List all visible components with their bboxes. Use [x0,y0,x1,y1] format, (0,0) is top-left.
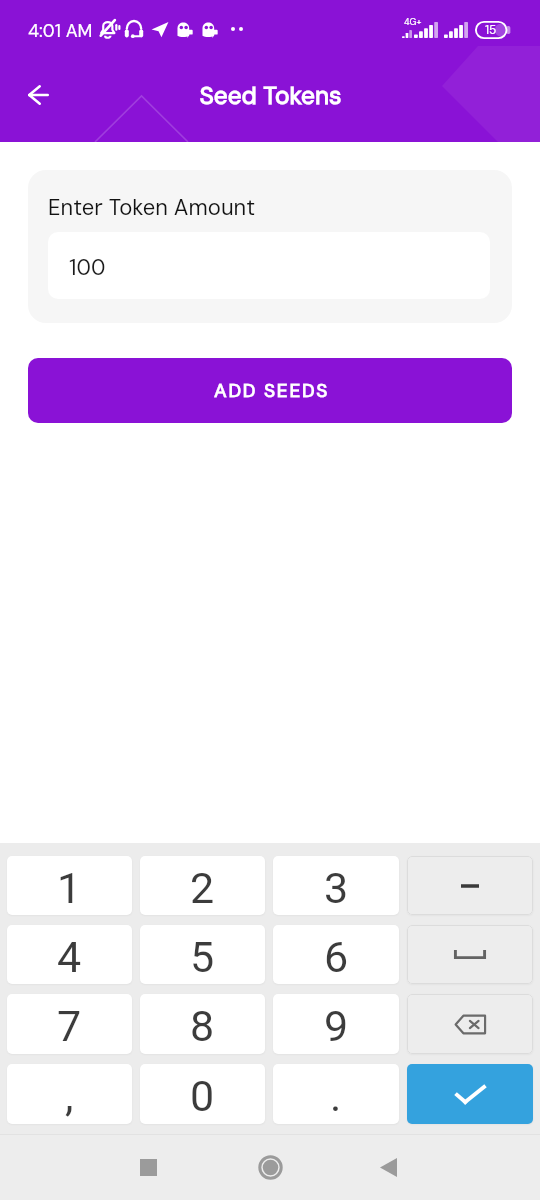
staticText: 4G+ [404,16,422,28]
staticText: 4:01 AM [28,19,93,42]
staticText: 2 [190,863,215,913]
button[interactable]: 7 [7,994,132,1054]
staticText: 9 [324,1001,349,1051]
button[interactable]: 5 [140,925,265,984]
button[interactable]: Minus [407,856,533,915]
button[interactable]: Back [364,1143,412,1191]
staticText: 15 [485,22,497,38]
staticText: 7 [57,1001,82,1051]
button[interactable]: Home [246,1143,294,1191]
button[interactable]: 4 [7,925,132,984]
staticText: 100 [69,253,106,282]
button[interactable]: Backspace [407,994,533,1054]
staticText: 6 [324,932,349,982]
button[interactable]: 1 [7,856,132,915]
button[interactable]: 100 [48,232,490,299]
staticText: 4 [57,932,82,982]
staticText: . [330,1071,342,1121]
button[interactable]: Done [407,1064,533,1124]
button[interactable]: 2 [140,856,265,915]
staticText: 5 [190,932,215,982]
button[interactable]: , [7,1064,132,1124]
button[interactable]: Space [407,925,533,984]
button[interactable]: 8 [140,994,265,1054]
button[interactable]: 3 [273,856,399,915]
staticText: Seed Tokens [199,80,342,112]
button[interactable]: 0 [140,1064,265,1124]
button[interactable]: ADD SEEDS [28,358,512,423]
staticText: 1 [57,863,82,913]
staticText: , [65,1071,74,1121]
button[interactable]: Back [14,71,62,119]
button[interactable]: 6 [273,925,399,984]
staticText: 3 [324,863,349,913]
staticText: ADD SEEDS [214,378,330,403]
button[interactable]: . [273,1064,399,1124]
button[interactable]: 9 [273,994,399,1054]
staticText: 0 [190,1071,215,1121]
button[interactable]: Recents [124,1143,172,1191]
staticText: Enter Token Amount [48,193,256,222]
staticText: 8 [190,1001,215,1051]
